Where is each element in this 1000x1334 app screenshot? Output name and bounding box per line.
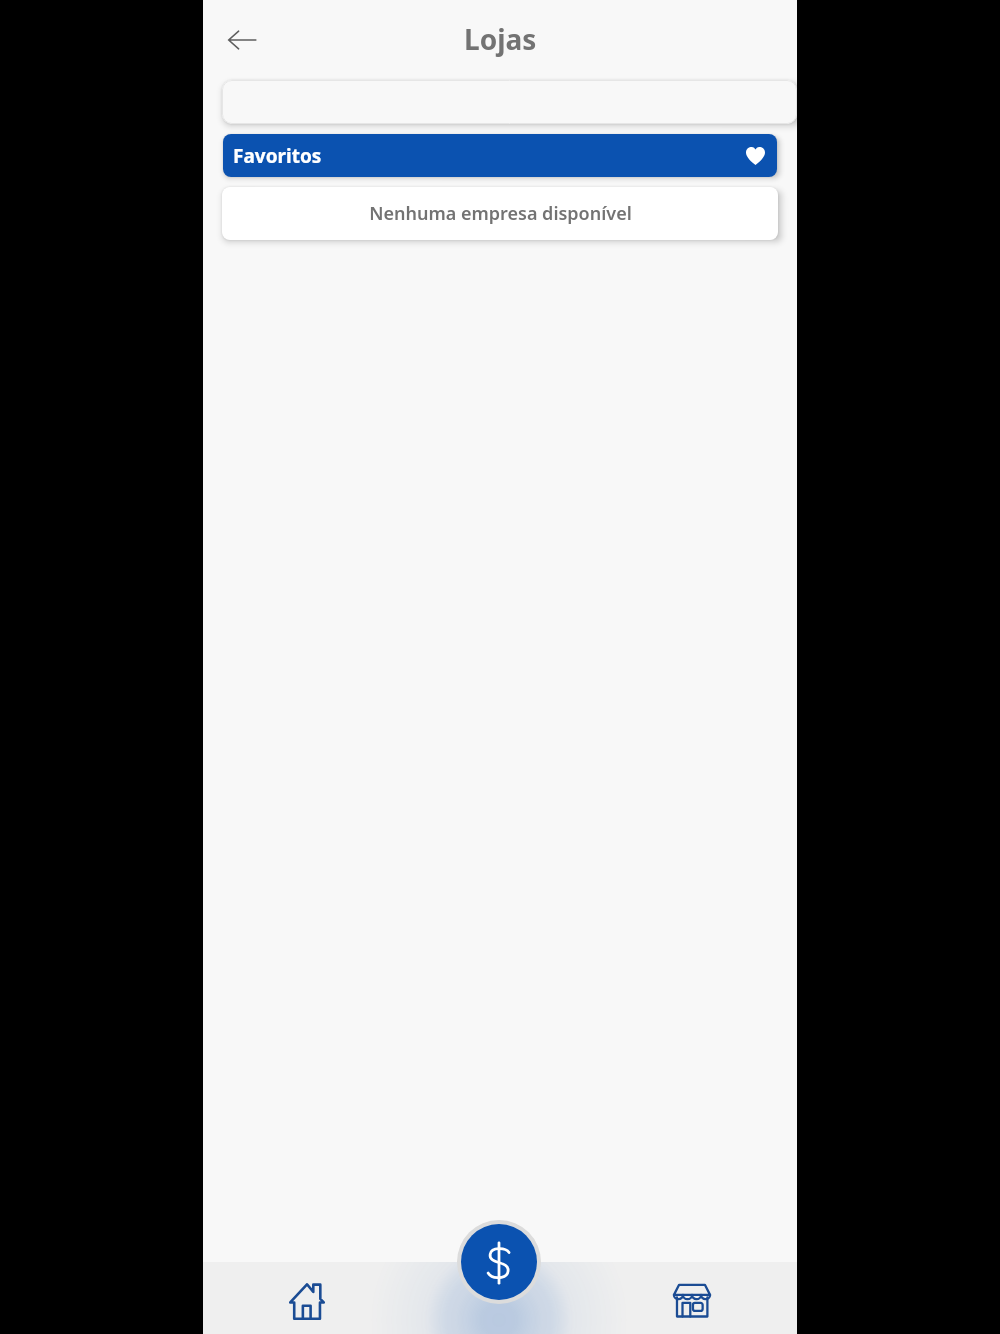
staticText: Favoritos: [233, 143, 322, 169]
button[interactable]: Início: [203, 1262, 401, 1334]
button[interactable]: Pagar: [457, 1220, 541, 1304]
button[interactable]: Lojas: [599, 1262, 797, 1334]
button[interactable]: Voltar: [218, 16, 266, 64]
staticText: Lojas: [464, 20, 537, 58]
staticText: Nenhuma empresa disponível: [369, 201, 632, 226]
button[interactable]: Favoritos: [223, 134, 777, 177]
button[interactable]: Nenhuma empresa disponível: [222, 187, 778, 240]
button[interactable]: Pesquisar: [222, 80, 797, 124]
